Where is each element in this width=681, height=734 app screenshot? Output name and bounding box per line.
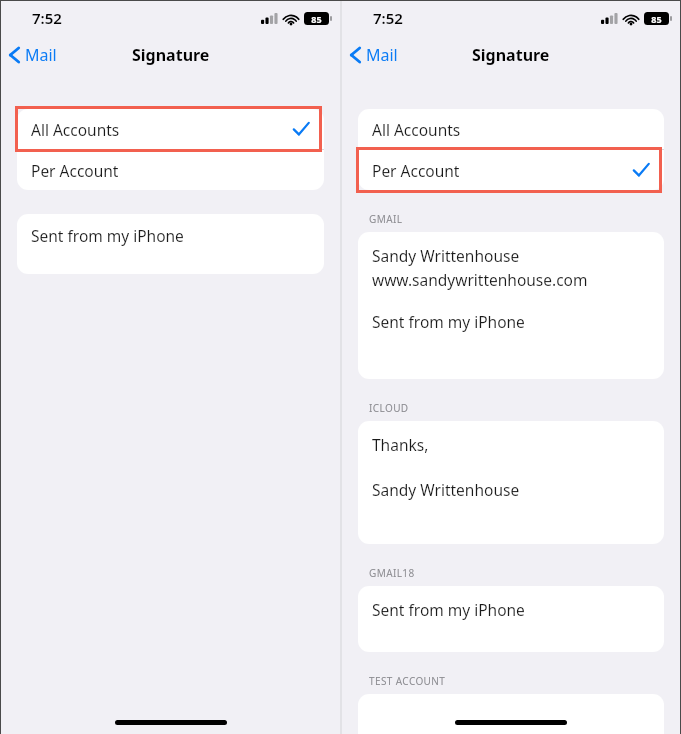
button[interactable]: Per Account xyxy=(358,150,664,190)
button[interactable]: Sent from my iPhone xyxy=(17,214,324,274)
staticText: GMAIL xyxy=(369,212,403,226)
staticText: TEST ACCOUNT xyxy=(369,674,446,688)
staticText: www.sandywrittenhouse.com xyxy=(372,269,588,290)
staticText: Thanks, xyxy=(372,434,429,455)
staticText: Sent from my iPhone xyxy=(372,599,525,620)
staticText: Mail xyxy=(366,44,398,66)
staticText: Signature xyxy=(132,44,210,66)
staticText: GMAIL18 xyxy=(369,566,415,580)
staticText: Signature xyxy=(472,44,550,66)
button[interactable]: All Accounts xyxy=(17,109,324,149)
staticText: All Accounts xyxy=(372,119,461,140)
button[interactable]: Sent from my iPhone xyxy=(358,586,664,652)
button[interactable]: Mail xyxy=(1,40,65,70)
staticText: Sent from my iPhone xyxy=(372,311,525,332)
staticText: Per Account xyxy=(372,160,460,181)
staticText: 7:52 xyxy=(373,8,403,28)
staticText: Per Account xyxy=(31,160,119,181)
button[interactable]: Sandy Writtenhouse xyxy=(358,232,664,379)
staticText: 7:52 xyxy=(32,8,62,28)
staticText: Sent from my iPhone xyxy=(31,225,184,246)
staticText: 85 xyxy=(651,13,662,25)
staticText: 85 xyxy=(311,13,322,25)
button[interactable]: Per Account xyxy=(17,150,324,190)
button[interactable] xyxy=(358,694,664,734)
staticText: Sandy Writtenhouse xyxy=(372,479,520,500)
staticText: ICLOUD xyxy=(369,401,409,415)
button[interactable]: All Accounts xyxy=(358,109,664,149)
staticText: All Accounts xyxy=(31,119,120,140)
button[interactable]: Thanks, xyxy=(358,421,664,544)
button[interactable]: Mail xyxy=(342,40,406,70)
staticText: Mail xyxy=(25,44,57,66)
staticText: Sandy Writtenhouse xyxy=(372,245,520,266)
